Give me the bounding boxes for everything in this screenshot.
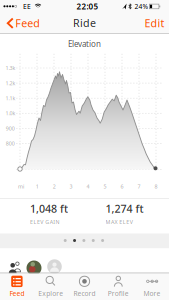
staticText: 1.0k (6, 110, 16, 117)
staticText: Elevation (68, 39, 101, 49)
staticText: 22:05 (76, 1, 98, 12)
staticText: EE (23, 2, 31, 11)
staticText: ELEV GAIN (30, 218, 60, 225)
button[interactable]: Kudos (5, 257, 63, 274)
staticText: 8 (154, 183, 157, 190)
staticText: Ride (73, 16, 96, 30)
button[interactable]: Edit (143, 15, 165, 31)
staticText: 7 (137, 183, 140, 190)
staticText: 1 (36, 183, 39, 190)
staticText: Feed (15, 16, 40, 30)
staticText: More (144, 289, 161, 298)
staticText: Feed (9, 289, 24, 298)
staticText: 2 (53, 183, 56, 190)
button[interactable]: More (135, 273, 169, 300)
staticText: 5 (103, 183, 106, 190)
button[interactable]: Record (68, 273, 101, 300)
button[interactable]: Page 2 of 5 (45, 235, 130, 246)
staticText: 800 (6, 140, 15, 147)
staticText: Record (73, 289, 95, 298)
button[interactable]: Explore (34, 273, 68, 300)
button[interactable]: Back to Feed (2, 15, 46, 31)
staticText: 1.2k (6, 80, 16, 87)
staticText: 1,048 ft (30, 202, 68, 216)
staticText: 1.1k (6, 95, 16, 102)
staticText: 24% (134, 2, 148, 11)
staticText: 900 (6, 125, 15, 132)
staticText: MAX ELEV (105, 218, 133, 225)
staticText: Profile (108, 289, 129, 298)
staticText: 1,274 ft (105, 202, 143, 216)
staticText: 1.3k (6, 64, 16, 72)
button[interactable]: Feed (0, 273, 34, 300)
staticText: 4 (86, 183, 89, 190)
staticText: 6 (120, 183, 123, 190)
button[interactable]: Profile (101, 273, 135, 300)
staticText: Edit (144, 16, 164, 30)
staticText: Explore (38, 289, 63, 298)
staticText: mi (18, 183, 24, 190)
staticText: 3 (69, 183, 72, 190)
